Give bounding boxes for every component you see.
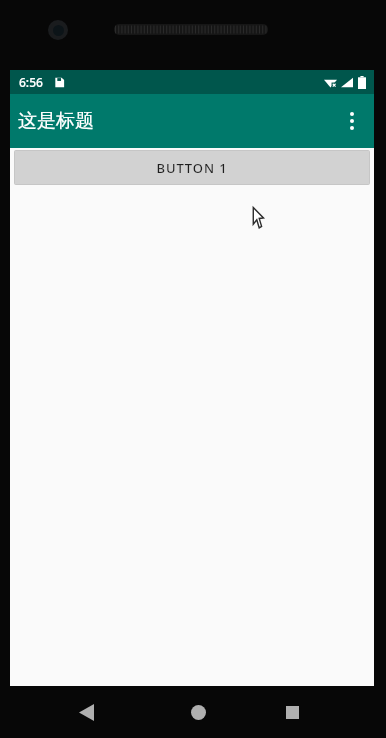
staticText: 6:56 (19, 74, 43, 90)
button[interactable]: BUTTON 1 (15, 151, 369, 184)
button[interactable]: More options (330, 94, 374, 148)
button[interactable]: Home (174, 688, 222, 736)
staticText: 这是标题 (18, 109, 94, 133)
button[interactable]: Back (62, 688, 110, 736)
staticText: BUTTON 1 (156, 159, 228, 177)
button[interactable]: Recent apps (268, 688, 316, 736)
